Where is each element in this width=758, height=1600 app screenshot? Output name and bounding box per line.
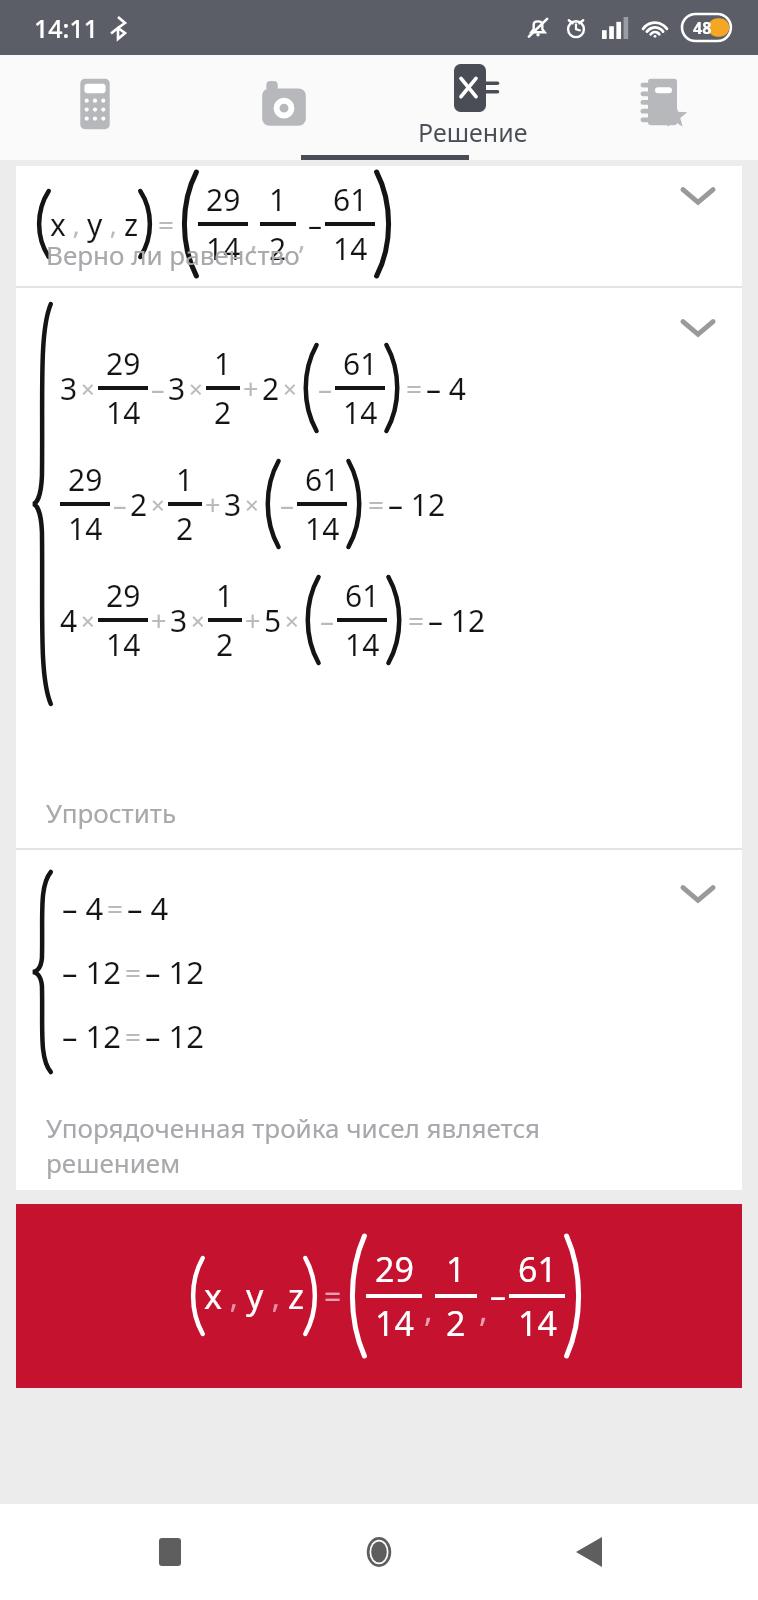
button[interactable]: Recent apps [130, 1512, 210, 1592]
staticText: + [243, 370, 259, 407]
staticText: 14 [343, 392, 378, 433]
staticText: Упорядоченная тройка чисел является [46, 1110, 541, 1145]
staticText: 14 [518, 1300, 557, 1346]
button[interactable]: 3 [16, 288, 742, 848]
staticText: 2 [262, 368, 280, 409]
staticText: = [125, 953, 142, 991]
staticText: 2 [216, 624, 234, 665]
staticText: – 12 [62, 1015, 122, 1057]
staticText: решением [46, 1145, 181, 1180]
staticText: – [308, 205, 323, 243]
staticText: + [245, 602, 261, 639]
staticText: 29 [106, 343, 141, 384]
staticText: 61 [343, 343, 378, 384]
staticText: 48 [693, 17, 712, 39]
button[interactable]: x [16, 1204, 742, 1388]
staticText: z [288, 1273, 304, 1319]
staticText: y [246, 1273, 264, 1319]
staticText: × [81, 604, 95, 637]
staticText: 14 [305, 508, 340, 549]
staticText: = [125, 1017, 142, 1055]
staticText: 1 [176, 459, 194, 500]
staticText: Упростить [46, 795, 177, 830]
staticText: 14 [106, 624, 141, 665]
staticText: Верно ли равенство [46, 237, 300, 272]
staticText: 61 [333, 179, 368, 220]
staticText: – 12 [428, 600, 486, 641]
staticText: – [490, 1274, 507, 1318]
staticText: = [368, 485, 385, 523]
staticText: 14:11 [34, 11, 99, 45]
staticText: 14 [68, 508, 103, 549]
staticText: 61 [518, 1246, 557, 1292]
staticText: z [124, 204, 139, 245]
staticText: 29 [106, 575, 141, 616]
staticText: , [479, 1288, 488, 1332]
staticText: 3 [170, 600, 188, 641]
staticText: = [406, 369, 423, 407]
staticText: 3 [168, 368, 186, 409]
staticText: , [250, 219, 258, 257]
staticText: 14 [345, 624, 380, 665]
staticText: , [222, 1276, 246, 1317]
staticText: Решение [418, 115, 528, 149]
staticText: 29 [68, 459, 103, 500]
staticText: 2 [214, 392, 232, 433]
button[interactable]: Решение [378, 55, 568, 160]
staticText: – 4 [426, 368, 466, 409]
staticText: 29 [375, 1246, 414, 1292]
staticText: 3 [224, 484, 242, 525]
staticText: × [191, 604, 205, 637]
staticText: 2 [446, 1300, 466, 1346]
button[interactable]: Home [339, 1512, 419, 1592]
staticText: × [285, 604, 299, 637]
staticText: , [66, 207, 87, 242]
staticText: 1 [269, 179, 287, 220]
staticText: 29 [206, 179, 241, 220]
staticText: = [107, 889, 124, 927]
staticText: 14 [106, 392, 141, 433]
staticText: , [298, 219, 306, 257]
button[interactable]: – 4 [16, 850, 742, 1190]
staticText: 14 [333, 228, 368, 269]
staticText: – [318, 369, 333, 407]
staticText: – 12 [388, 484, 446, 525]
staticText: × [151, 488, 165, 521]
staticText: 2 [176, 508, 194, 549]
button[interactable]: Expand step [670, 300, 726, 356]
staticText: – [151, 370, 165, 407]
button[interactable]: Notebook [568, 55, 758, 160]
staticText: × [189, 372, 203, 405]
staticText: 5 [264, 600, 282, 641]
staticText: , [424, 1288, 433, 1332]
staticText: 1 [216, 575, 234, 616]
staticText: 61 [345, 575, 380, 616]
staticText: – 12 [145, 1015, 205, 1057]
staticText: = [408, 601, 425, 639]
staticText: – 4 [127, 887, 169, 929]
staticText: × [81, 372, 95, 405]
staticText: , [103, 207, 124, 242]
staticText: 1 [446, 1246, 466, 1292]
staticText: × [283, 372, 297, 405]
staticText: = [324, 1276, 342, 1317]
staticText: – 4 [62, 887, 104, 929]
staticText: – [113, 486, 127, 523]
staticText: 2 [269, 228, 287, 269]
staticText: x [50, 204, 66, 245]
staticText: 14 [375, 1300, 414, 1346]
staticText: = [158, 205, 175, 243]
staticText: 3 [60, 368, 78, 409]
button[interactable]: Camera [189, 55, 378, 160]
staticText: – [280, 485, 295, 523]
button[interactable]: Expand step [670, 866, 726, 922]
button[interactable]: x [16, 166, 742, 286]
button[interactable]: Back [549, 1512, 629, 1592]
staticText: – 12 [62, 951, 122, 993]
staticText: + [205, 486, 221, 523]
staticText: 1 [214, 343, 232, 384]
staticText: 2 [130, 484, 148, 525]
button[interactable]: Expand step [670, 168, 726, 224]
button[interactable]: Calculator [0, 55, 189, 160]
staticText: 4 [60, 600, 78, 641]
